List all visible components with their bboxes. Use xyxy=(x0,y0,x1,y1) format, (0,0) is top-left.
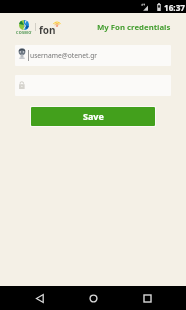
button[interactable]: Back xyxy=(22,286,58,310)
button[interactable]: username@otenet.gr xyxy=(15,45,171,66)
staticText: My Fon credentials xyxy=(97,22,171,33)
button[interactable]: Save xyxy=(31,107,155,126)
button[interactable]: Home xyxy=(75,286,111,310)
button[interactable] xyxy=(15,75,171,96)
staticText: 16:37 xyxy=(164,2,186,13)
staticText: COSMOTE xyxy=(16,30,32,35)
staticText: username@otenet.gr xyxy=(30,51,98,60)
staticText: Save xyxy=(83,110,104,122)
staticText: fon xyxy=(39,23,56,37)
button[interactable]: Recent apps xyxy=(129,286,165,310)
